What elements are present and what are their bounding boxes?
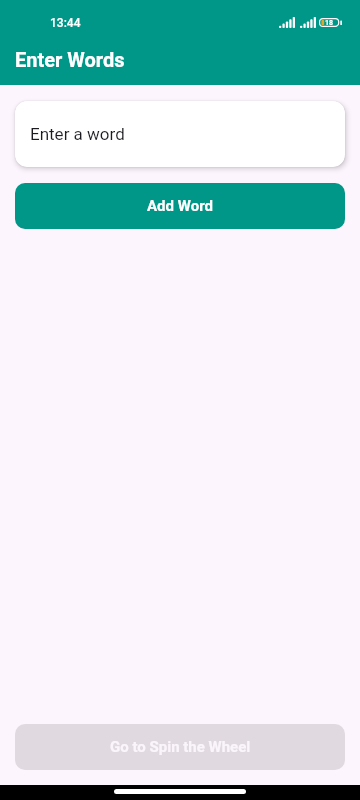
staticText: Enter Words — [15, 48, 125, 71]
staticText: Enter a word — [30, 124, 125, 144]
button[interactable]: Go to Spin the Wheel — [15, 724, 345, 770]
other: Mobile signal — [300, 17, 316, 28]
staticText: Add Word — [147, 197, 213, 215]
button[interactable]: Add Word — [15, 183, 345, 229]
other: Mobile signal — [279, 17, 295, 28]
staticText: 18 — [325, 19, 334, 27]
staticText: 13:44 — [50, 16, 81, 30]
other: Battery 18 percent — [319, 18, 343, 27]
button[interactable]: Enter a word — [15, 101, 345, 167]
staticText: Go to Spin the Wheel — [110, 738, 251, 756]
button[interactable]: Home gesture handle — [114, 789, 246, 794]
